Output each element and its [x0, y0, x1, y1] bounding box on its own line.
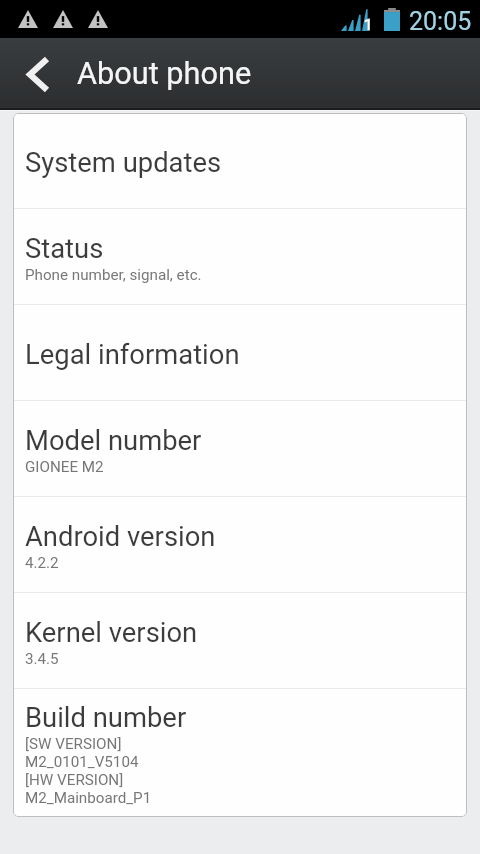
button[interactable]: Model number: [13, 401, 467, 496]
button[interactable]: Kernel version: [13, 593, 467, 688]
staticText: Kernel version: [25, 617, 198, 649]
staticText: Android version: [25, 521, 216, 553]
button[interactable]: System updates: [13, 113, 467, 208]
staticText: About phone: [77, 56, 252, 92]
staticText: Model number: [25, 425, 202, 457]
staticText: System updates: [25, 147, 222, 179]
button[interactable]: Back: [0, 38, 70, 110]
button[interactable]: Build number: [13, 689, 467, 816]
staticText: 20:05: [409, 7, 472, 36]
staticText: GIONEE M2: [25, 458, 104, 476]
staticText: Build number: [25, 702, 187, 734]
staticText: 1: [364, 16, 373, 34]
staticText: 4.2.2: [25, 554, 59, 572]
button[interactable]: Legal information: [13, 305, 467, 400]
staticText: Legal information: [25, 339, 240, 371]
button[interactable]: Android version: [13, 497, 467, 592]
button[interactable]: Status: [13, 209, 467, 304]
staticText: [SW VERSION] M2_0101_V5104 [HW VERSION] …: [25, 735, 152, 807]
staticText: Phone number, signal, etc.: [25, 266, 202, 284]
staticText: 3.4.5: [25, 650, 59, 668]
staticText: Status: [25, 233, 104, 265]
